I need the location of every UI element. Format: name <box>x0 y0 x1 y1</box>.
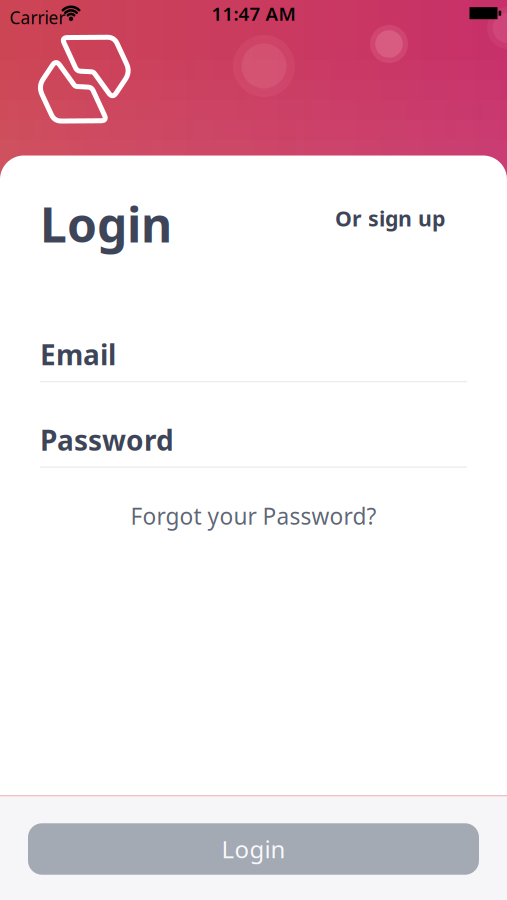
button[interactable]: Forgot your Password? <box>130 501 376 531</box>
button[interactable]: Email <box>40 341 467 377</box>
staticText: Login <box>40 192 172 256</box>
staticText: Or sign up <box>335 204 445 232</box>
button[interactable]: Or sign up <box>335 204 445 232</box>
button[interactable]: Password <box>40 426 467 462</box>
staticText: Carrier <box>9 6 65 29</box>
staticText: Email <box>40 336 116 373</box>
staticText: Password <box>40 421 174 458</box>
staticText: 11:47 AM <box>211 1 295 26</box>
button[interactable]: Login <box>28 823 479 875</box>
staticText: Login <box>221 833 285 865</box>
staticText: Forgot your Password? <box>130 501 376 531</box>
